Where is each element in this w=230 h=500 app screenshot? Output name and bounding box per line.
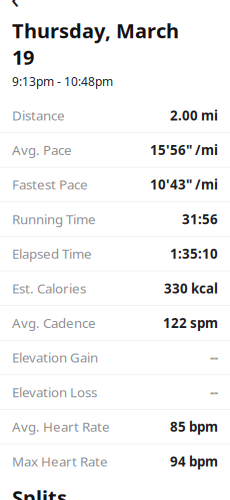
staticText: -- xyxy=(210,383,218,401)
staticText: 1:35:10 xyxy=(170,245,218,262)
staticText: Fastest Pace xyxy=(12,176,88,193)
staticText: Elapsed Time xyxy=(12,245,92,262)
staticText: Avg. Cadence xyxy=(12,314,96,332)
staticText: Thursday, March 19 xyxy=(12,17,179,70)
staticText: 330 kcal xyxy=(164,279,218,297)
staticText: 31:56 xyxy=(182,210,218,228)
staticText: Max Heart Rate xyxy=(12,452,108,470)
staticText: 2.00 mi xyxy=(170,106,218,124)
staticText: Est. Calories xyxy=(12,279,86,297)
staticText: Splits xyxy=(12,484,67,500)
staticText: Elevation Gain xyxy=(12,349,98,366)
staticText: 15'56" /mi xyxy=(150,141,218,159)
staticText: Elevation Loss xyxy=(12,383,97,401)
staticText: 10'43" /mi xyxy=(150,176,218,193)
button[interactable]: Back xyxy=(0,0,37,9)
staticText: -- xyxy=(210,349,218,366)
staticText: Avg. Heart Rate xyxy=(12,418,110,435)
staticText: 94 bpm xyxy=(170,452,218,470)
staticText: Avg. Pace xyxy=(12,141,72,159)
staticText: 122 spm xyxy=(163,314,218,332)
staticText: 85 bpm xyxy=(170,418,218,435)
staticText: Distance xyxy=(12,106,65,124)
staticText: ‹ xyxy=(11,0,19,16)
staticText: 9:13pm - 10:48pm xyxy=(12,73,113,89)
staticText: Running Time xyxy=(12,210,96,228)
